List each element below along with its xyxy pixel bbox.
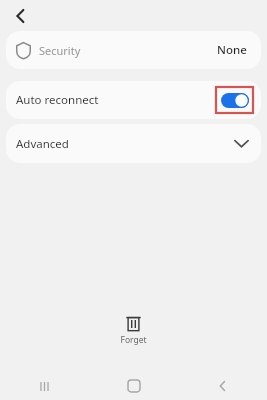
button[interactable]: Security [6, 31, 261, 69]
button[interactable]: Recents [0, 372, 89, 400]
button[interactable]: Back [178, 372, 267, 400]
staticText: Auto reconnect [16, 92, 99, 108]
staticText: Advanced [16, 136, 69, 152]
button[interactable]: Advanced [6, 124, 261, 163]
staticText: Security [39, 43, 81, 58]
button[interactable]: Navigate up [6, 2, 34, 30]
button[interactable]: Auto reconnect [6, 81, 261, 119]
staticText: Forget [120, 334, 147, 346]
button[interactable]: Forget [0, 315, 267, 346]
button[interactable]: Auto reconnect toggle, on [216, 87, 253, 113]
button[interactable]: Home [89, 372, 178, 400]
staticText: None [217, 42, 247, 58]
